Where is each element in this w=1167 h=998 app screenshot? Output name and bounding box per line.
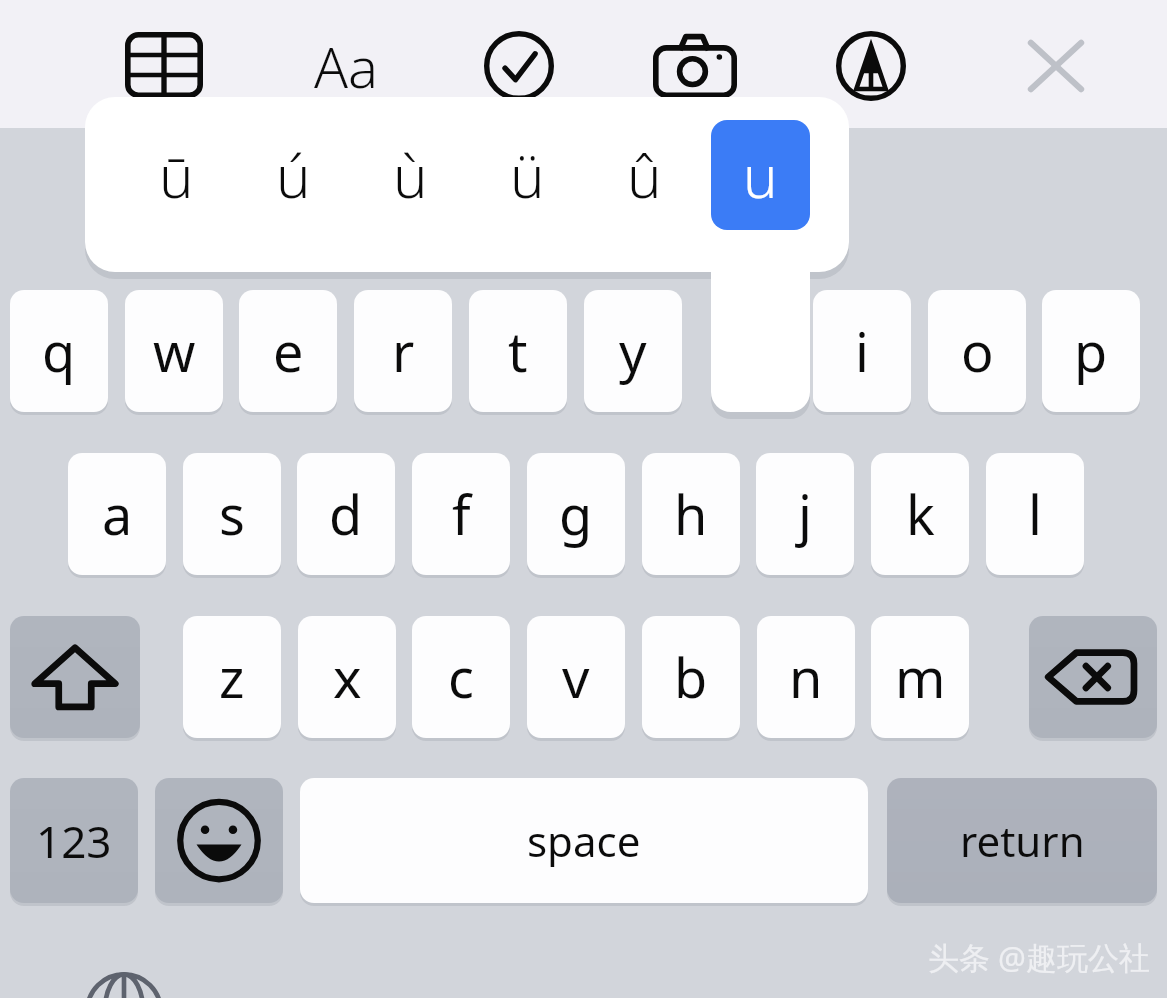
button[interactable]: g <box>527 453 625 575</box>
staticText: s <box>219 477 245 551</box>
button[interactable]: 123 <box>10 778 138 903</box>
staticText: û <box>627 136 662 215</box>
button[interactable]: f <box>412 453 510 575</box>
button[interactable]: Markup <box>836 30 906 102</box>
button[interactable]: w <box>125 290 223 412</box>
button[interactable]: q <box>10 290 108 412</box>
button[interactable]: return <box>887 778 1157 903</box>
staticText: f <box>452 477 471 551</box>
button[interactable]: p <box>1042 290 1140 412</box>
button[interactable]: n <box>757 616 855 738</box>
staticText: n <box>789 640 823 714</box>
button[interactable]: Switch keyboard <box>84 974 164 998</box>
staticText: m <box>895 640 946 714</box>
button[interactable]: Checklist <box>484 30 554 102</box>
staticText: ù <box>393 136 428 215</box>
button[interactable]: Aa <box>298 28 394 102</box>
staticText: t <box>508 314 528 388</box>
button[interactable]: d <box>297 453 395 575</box>
staticText: ū <box>159 136 194 215</box>
button[interactable]: û <box>589 118 699 232</box>
staticText: a <box>102 477 133 551</box>
staticText: 123 <box>36 811 112 871</box>
staticText: y <box>619 314 647 388</box>
staticText: Aa <box>314 28 379 102</box>
staticText: z <box>219 640 245 714</box>
staticText: return <box>960 812 1085 869</box>
button[interactable]: o <box>928 290 1026 412</box>
button[interactable]: v <box>527 616 625 738</box>
button[interactable]: c <box>412 616 510 738</box>
button[interactable]: u <box>711 120 810 230</box>
staticText: d <box>329 477 363 551</box>
staticText: i <box>855 314 869 388</box>
staticText: e <box>273 314 304 388</box>
staticText: w <box>153 314 196 388</box>
staticText: x <box>333 640 362 714</box>
button[interactable]: ù <box>355 118 465 232</box>
button[interactable]: e <box>239 290 337 412</box>
button[interactable]: ü <box>472 118 582 232</box>
button[interactable]: ú <box>238 118 348 232</box>
staticText: ú <box>276 136 311 215</box>
button[interactable]: space <box>300 778 868 903</box>
button[interactable]: b <box>642 616 740 738</box>
button[interactable]: l <box>986 453 1084 575</box>
staticText: b <box>674 640 708 714</box>
button[interactable]: i <box>813 290 911 412</box>
button[interactable]: h <box>642 453 740 575</box>
staticText: v <box>562 640 590 714</box>
button[interactable]: z <box>183 616 281 738</box>
button[interactable]: r <box>354 290 452 412</box>
button[interactable]: x <box>298 616 396 738</box>
staticText: ü <box>510 136 545 215</box>
staticText: o <box>961 314 994 388</box>
button[interactable]: m <box>871 616 969 738</box>
staticText: k <box>906 477 935 551</box>
staticText: l <box>1028 477 1042 551</box>
button[interactable]: s <box>183 453 281 575</box>
button[interactable]: Close <box>1022 34 1090 98</box>
button[interactable]: Camera <box>653 32 737 98</box>
button[interactable]: Insert table <box>125 32 203 98</box>
button[interactable]: a <box>68 453 166 575</box>
button[interactable]: k <box>871 453 969 575</box>
button[interactable]: Shift <box>10 616 140 738</box>
staticText: u <box>743 136 778 215</box>
staticText: p <box>1074 314 1108 388</box>
button[interactable]: ū <box>121 118 231 232</box>
button[interactable]: Backspace <box>1029 616 1157 738</box>
button[interactable]: t <box>469 290 567 412</box>
button[interactable]: y <box>584 290 682 412</box>
staticText: h <box>674 477 708 551</box>
staticText: j <box>798 477 812 551</box>
staticText: space <box>527 812 641 869</box>
staticText: r <box>392 314 415 388</box>
staticText: 头条 @趣玩公社 <box>928 936 1150 978</box>
button[interactable]: j <box>756 453 854 575</box>
staticText: g <box>559 477 593 551</box>
staticText: c <box>448 640 474 714</box>
staticText: q <box>42 314 76 388</box>
button[interactable]: Emoji <box>155 778 283 903</box>
